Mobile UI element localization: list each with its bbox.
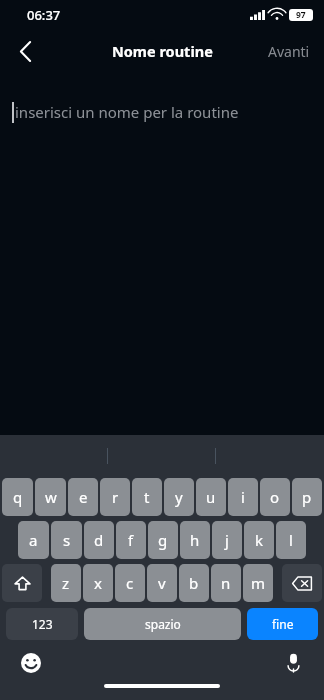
- staticText: f: [128, 530, 134, 550]
- button[interactable]: n: [211, 564, 241, 602]
- staticText: g: [158, 530, 168, 550]
- button[interactable]: m: [243, 564, 273, 602]
- button[interactable]: k: [244, 521, 274, 559]
- button[interactable]: e: [68, 478, 98, 516]
- staticText: 97: [296, 9, 306, 21]
- staticText: o: [270, 487, 280, 507]
- staticText: c: [126, 573, 134, 593]
- staticText: s: [63, 530, 71, 550]
- button[interactable]: v: [147, 564, 177, 602]
- staticText: l: [289, 530, 293, 550]
- button[interactable]: u: [196, 478, 226, 516]
- staticText: u: [206, 487, 216, 507]
- staticText: spazio: [145, 616, 181, 632]
- staticText: 06:37: [27, 6, 61, 24]
- staticText: inserisci un nome per la routine: [15, 102, 239, 122]
- button[interactable]: s: [51, 521, 82, 559]
- button[interactable]: d: [84, 521, 114, 559]
- button[interactable]: b: [179, 564, 209, 602]
- button[interactable]: 123: [6, 608, 78, 640]
- staticText: y: [175, 487, 183, 507]
- staticText: b: [189, 573, 199, 593]
- staticText: d: [94, 530, 104, 550]
- button[interactable]: q: [2, 478, 33, 516]
- button[interactable]: g: [148, 521, 178, 559]
- button[interactable]: Dettatura: [278, 648, 308, 678]
- staticText: h: [190, 530, 200, 550]
- button[interactable]: Emoji: [16, 648, 46, 678]
- staticText: z: [62, 573, 70, 593]
- staticText: n: [221, 573, 231, 593]
- button[interactable]: w: [35, 478, 66, 516]
- staticText: a: [29, 530, 38, 550]
- button[interactable]: Cancella: [282, 564, 322, 602]
- button[interactable]: l: [276, 521, 306, 559]
- staticText: j: [225, 530, 229, 550]
- staticText: m: [251, 573, 266, 593]
- button[interactable]: z: [51, 564, 81, 602]
- staticText: e: [79, 487, 88, 507]
- button[interactable]: i: [228, 478, 258, 516]
- button[interactable]: c: [115, 564, 145, 602]
- button[interactable]: Maiuscole: [2, 564, 42, 602]
- button[interactable]: t: [132, 478, 162, 516]
- staticText: 123: [32, 616, 53, 632]
- button[interactable]: fine: [247, 608, 318, 640]
- button[interactable]: x: [83, 564, 113, 602]
- button[interactable]: Avanti: [262, 34, 316, 69]
- staticText: v: [158, 573, 166, 593]
- staticText: w: [45, 487, 57, 507]
- button[interactable]: o: [260, 478, 290, 516]
- button[interactable]: h: [180, 521, 210, 559]
- staticText: q: [13, 487, 23, 507]
- button[interactable]: p: [292, 478, 322, 516]
- button[interactable]: spazio: [84, 608, 241, 640]
- button[interactable]: y: [164, 478, 194, 516]
- staticText: k: [255, 530, 264, 550]
- staticText: i: [241, 487, 245, 507]
- button[interactable]: j: [212, 521, 242, 559]
- staticText: p: [302, 487, 312, 507]
- staticText: Avanti: [268, 42, 310, 61]
- button[interactable]: r: [100, 478, 130, 516]
- staticText: t: [144, 487, 150, 507]
- staticText: fine: [272, 616, 294, 632]
- staticText: r: [112, 487, 119, 507]
- staticText: Nome routine: [112, 41, 213, 61]
- staticText: x: [94, 573, 102, 593]
- button[interactable]: a: [18, 521, 49, 559]
- button[interactable]: Indietro: [6, 32, 44, 70]
- button[interactable]: f: [116, 521, 146, 559]
